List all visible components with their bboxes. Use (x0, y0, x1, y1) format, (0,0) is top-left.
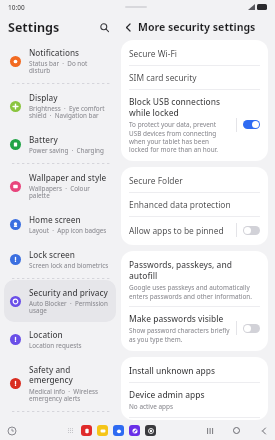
button[interactable]: Back (121, 20, 135, 34)
staticText: Block USB connections while locked (129, 96, 230, 118)
staticText: No active apps (129, 402, 174, 411)
button[interactable]: Block USB connections while locked (121, 90, 268, 159)
staticText: Location (29, 329, 63, 340)
staticText: Power saving · Charging (29, 146, 104, 155)
staticText: Allow apps to be pinned (129, 225, 224, 236)
button[interactable]: Secure Wi-Fi (121, 42, 268, 65)
staticText: Battery (29, 134, 58, 145)
staticText: Status bar · Do not disturb (29, 59, 110, 75)
button[interactable]: App 3 (129, 425, 140, 436)
button[interactable]: Allow apps to be pinned (121, 217, 268, 243)
button[interactable]: Location (4, 322, 116, 357)
staticText: Safety and emergency (29, 364, 110, 386)
staticText: Notifications (29, 47, 79, 58)
staticText: Enhanced data protection (129, 199, 231, 210)
button[interactable]: Make passwords visible (121, 307, 268, 349)
button[interactable]: Display (4, 85, 116, 127)
staticText: Passwords, passkeys, and autofill (129, 259, 260, 281)
button[interactable]: App 4 (145, 425, 156, 436)
button[interactable]: Recents (204, 425, 215, 436)
staticText: Display (29, 92, 58, 103)
staticText: Make passwords visible (129, 313, 224, 324)
staticText: Secure Wi-Fi (129, 48, 177, 59)
button[interactable]: On (243, 120, 260, 129)
staticText: Auto Blocker · Permission usage (29, 299, 110, 315)
staticText: Lock screen (29, 249, 75, 260)
staticText: Security and privacy (29, 287, 108, 298)
button[interactable]: Device admin apps (121, 383, 268, 417)
button[interactable]: Off (243, 226, 260, 235)
staticText: Device admin apps (129, 389, 205, 400)
staticText: SIM card security (129, 72, 197, 83)
button[interactable]: Notifications (4, 40, 116, 82)
button[interactable]: Search (96, 19, 112, 35)
button[interactable]: Battery (4, 127, 116, 162)
staticText: More security settings (138, 20, 256, 34)
button[interactable]: App 0 (81, 425, 92, 436)
button[interactable]: App 1 (97, 425, 108, 436)
staticText: Medical info · Wireless emergency alerts (29, 387, 110, 403)
button[interactable]: Home screen (4, 207, 116, 242)
staticText: Home screen (29, 214, 81, 225)
staticText: Layout · App icon badges (29, 226, 107, 235)
button[interactable]: Enhanced data protection (121, 193, 268, 216)
button[interactable]: All apps (65, 425, 76, 436)
staticText: Settings (8, 19, 60, 36)
button[interactable]: Safety and emergency (4, 357, 116, 410)
staticText: Wallpapers · Colour palette (29, 184, 110, 200)
staticText: To protect your data, prevent USB device… (129, 120, 230, 153)
staticText: Google uses passkeys and automatically e… (129, 283, 260, 300)
staticText: Install unknown apps (129, 365, 215, 376)
button[interactable]: Secure Folder (121, 169, 268, 192)
button[interactable]: Home (231, 425, 242, 436)
button[interactable]: SIM card security (121, 66, 268, 89)
button[interactable]: Off (243, 324, 260, 333)
button[interactable]: Security and privacy (4, 280, 116, 322)
staticText: Location requests (29, 341, 82, 350)
button[interactable]: Lock screen (4, 242, 116, 277)
staticText: Brightness · Eye comfort shield · Naviga… (29, 104, 110, 120)
staticText: Show password characters briefly as you … (129, 326, 230, 343)
button[interactable]: App 2 (113, 425, 124, 436)
button[interactable]: Install unknown apps (121, 359, 268, 382)
button[interactable]: Recents history (6, 425, 17, 436)
staticText: Screen lock and biometrics (29, 261, 109, 270)
button[interactable]: Wallpaper and style (4, 165, 116, 207)
button[interactable]: Passwords, passkeys, and autofill (121, 253, 268, 306)
button[interactable]: Back (258, 425, 269, 436)
staticText: Secure Folder (129, 175, 183, 186)
staticText: 10:00 (8, 3, 25, 12)
staticText: Wallpaper and style (29, 172, 107, 183)
